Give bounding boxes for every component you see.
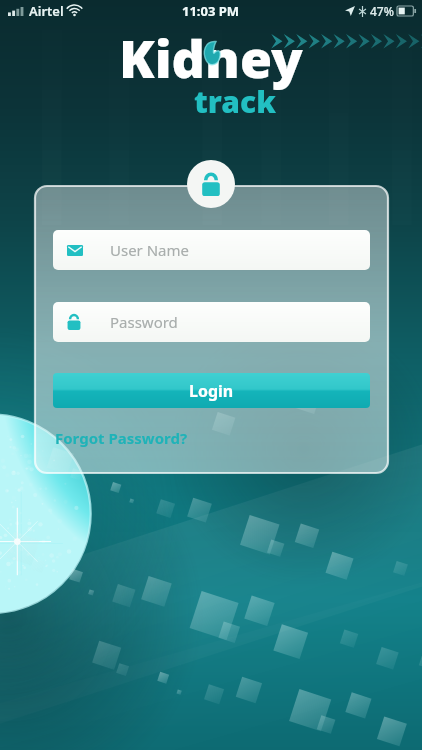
staticText: User Name [110,240,190,260]
staticText: track [194,81,276,122]
staticText: 11:03 PM [182,2,240,20]
button[interactable]: Forgot Password? [53,426,190,450]
button[interactable]: Login [53,373,370,408]
button[interactable]: Password [53,302,370,342]
staticText: 47% [370,3,394,19]
staticText: Password [110,312,178,332]
button[interactable]: User Name [53,230,370,270]
staticText: Airtel [29,2,64,20]
staticText: Forgot Password? [55,428,188,448]
other: Secure login [187,160,235,208]
staticText: Kidney [119,22,303,93]
staticText: Login [189,380,234,402]
